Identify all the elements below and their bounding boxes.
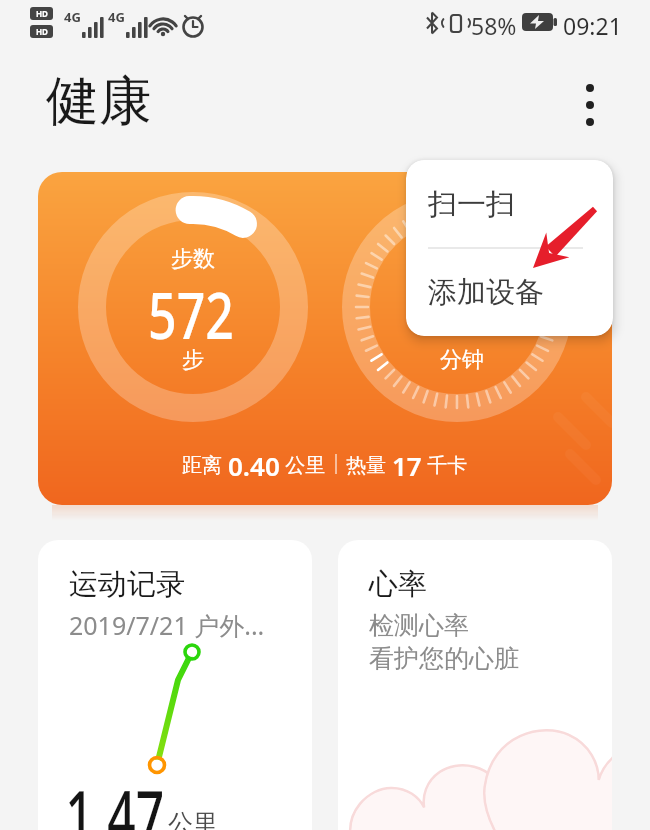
staticText: 公里 [168, 808, 218, 830]
staticText: 分钟 [440, 346, 484, 374]
staticText: 运动记录 [69, 566, 185, 603]
staticText: 2019/7/21 户外... [69, 608, 265, 642]
staticText: 572 [148, 271, 234, 358]
staticText: 检测心率 [369, 610, 469, 641]
staticText: HD [36, 26, 48, 37]
button[interactable]: 添加设备 [406, 248, 613, 336]
button[interactable]: 运动记录 [38, 540, 312, 830]
staticText: 心率 [369, 566, 427, 603]
staticText: 4G [64, 8, 81, 26]
staticText: 4G [108, 8, 125, 26]
button[interactable]: 心率 [338, 540, 612, 830]
button[interactable]: 步数 [38, 172, 612, 505]
staticText: HD [36, 8, 48, 19]
staticText: 添加设备 [428, 274, 544, 311]
staticText: 步数 [171, 245, 215, 273]
staticText: 0.40 [228, 448, 280, 480]
staticText: 1.47 [65, 767, 165, 830]
staticText: 58% [471, 10, 517, 41]
staticText: 看护您的心脏 [369, 643, 519, 674]
staticText: 千卡 [422, 451, 468, 478]
staticText: 09:21 [563, 10, 622, 41]
staticText: 17 [392, 448, 422, 480]
staticText: 扫一扫 [428, 186, 515, 223]
staticText: 健康 [46, 68, 152, 135]
staticText: 公里 [280, 451, 326, 478]
button[interactable]: 扫一扫 [406, 160, 613, 248]
staticText: 距离 [182, 451, 228, 478]
staticText: 热量 [346, 451, 392, 478]
button[interactable] [578, 82, 602, 130]
staticText: 步 [182, 346, 204, 374]
